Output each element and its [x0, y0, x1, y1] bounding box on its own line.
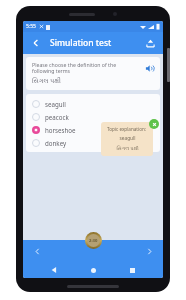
- button[interactable]: seagull: [26, 97, 160, 110]
- button[interactable]: Timer: [85, 232, 102, 249]
- staticText: seagull: [119, 135, 136, 142]
- button[interactable]: donkey: [26, 136, 160, 149]
- button[interactable]: Back: [28, 35, 44, 51]
- staticText: donkey: [45, 139, 67, 147]
- button[interactable]: Back: [46, 262, 62, 278]
- staticText: સિગલ પક્ષી: [116, 145, 139, 152]
- button[interactable]: horseshoe: [26, 123, 160, 136]
- staticText: seagull: [45, 100, 66, 108]
- button[interactable]: Play audio: [142, 61, 156, 75]
- button[interactable]: Close explanation: [149, 119, 159, 129]
- button[interactable]: Previous question: [29, 243, 45, 259]
- button[interactable]: Next question: [141, 243, 157, 259]
- staticText: peacock: [45, 113, 69, 121]
- staticText: 5:55: [26, 23, 36, 30]
- staticText: Topic explanation:: [107, 126, 147, 132]
- staticText: Please choose the definition of the foll…: [32, 61, 138, 75]
- button[interactable]: Recent apps: [124, 262, 140, 278]
- staticText: horseshoe: [45, 126, 76, 134]
- staticText: Simulation test: [50, 37, 112, 49]
- button[interactable]: peacock: [26, 110, 160, 123]
- staticText: સિગલ પક્ષી: [32, 76, 61, 85]
- button[interactable]: Upload: [142, 35, 158, 51]
- button[interactable]: Home: [85, 262, 101, 278]
- staticText: 2:30: [89, 238, 98, 244]
